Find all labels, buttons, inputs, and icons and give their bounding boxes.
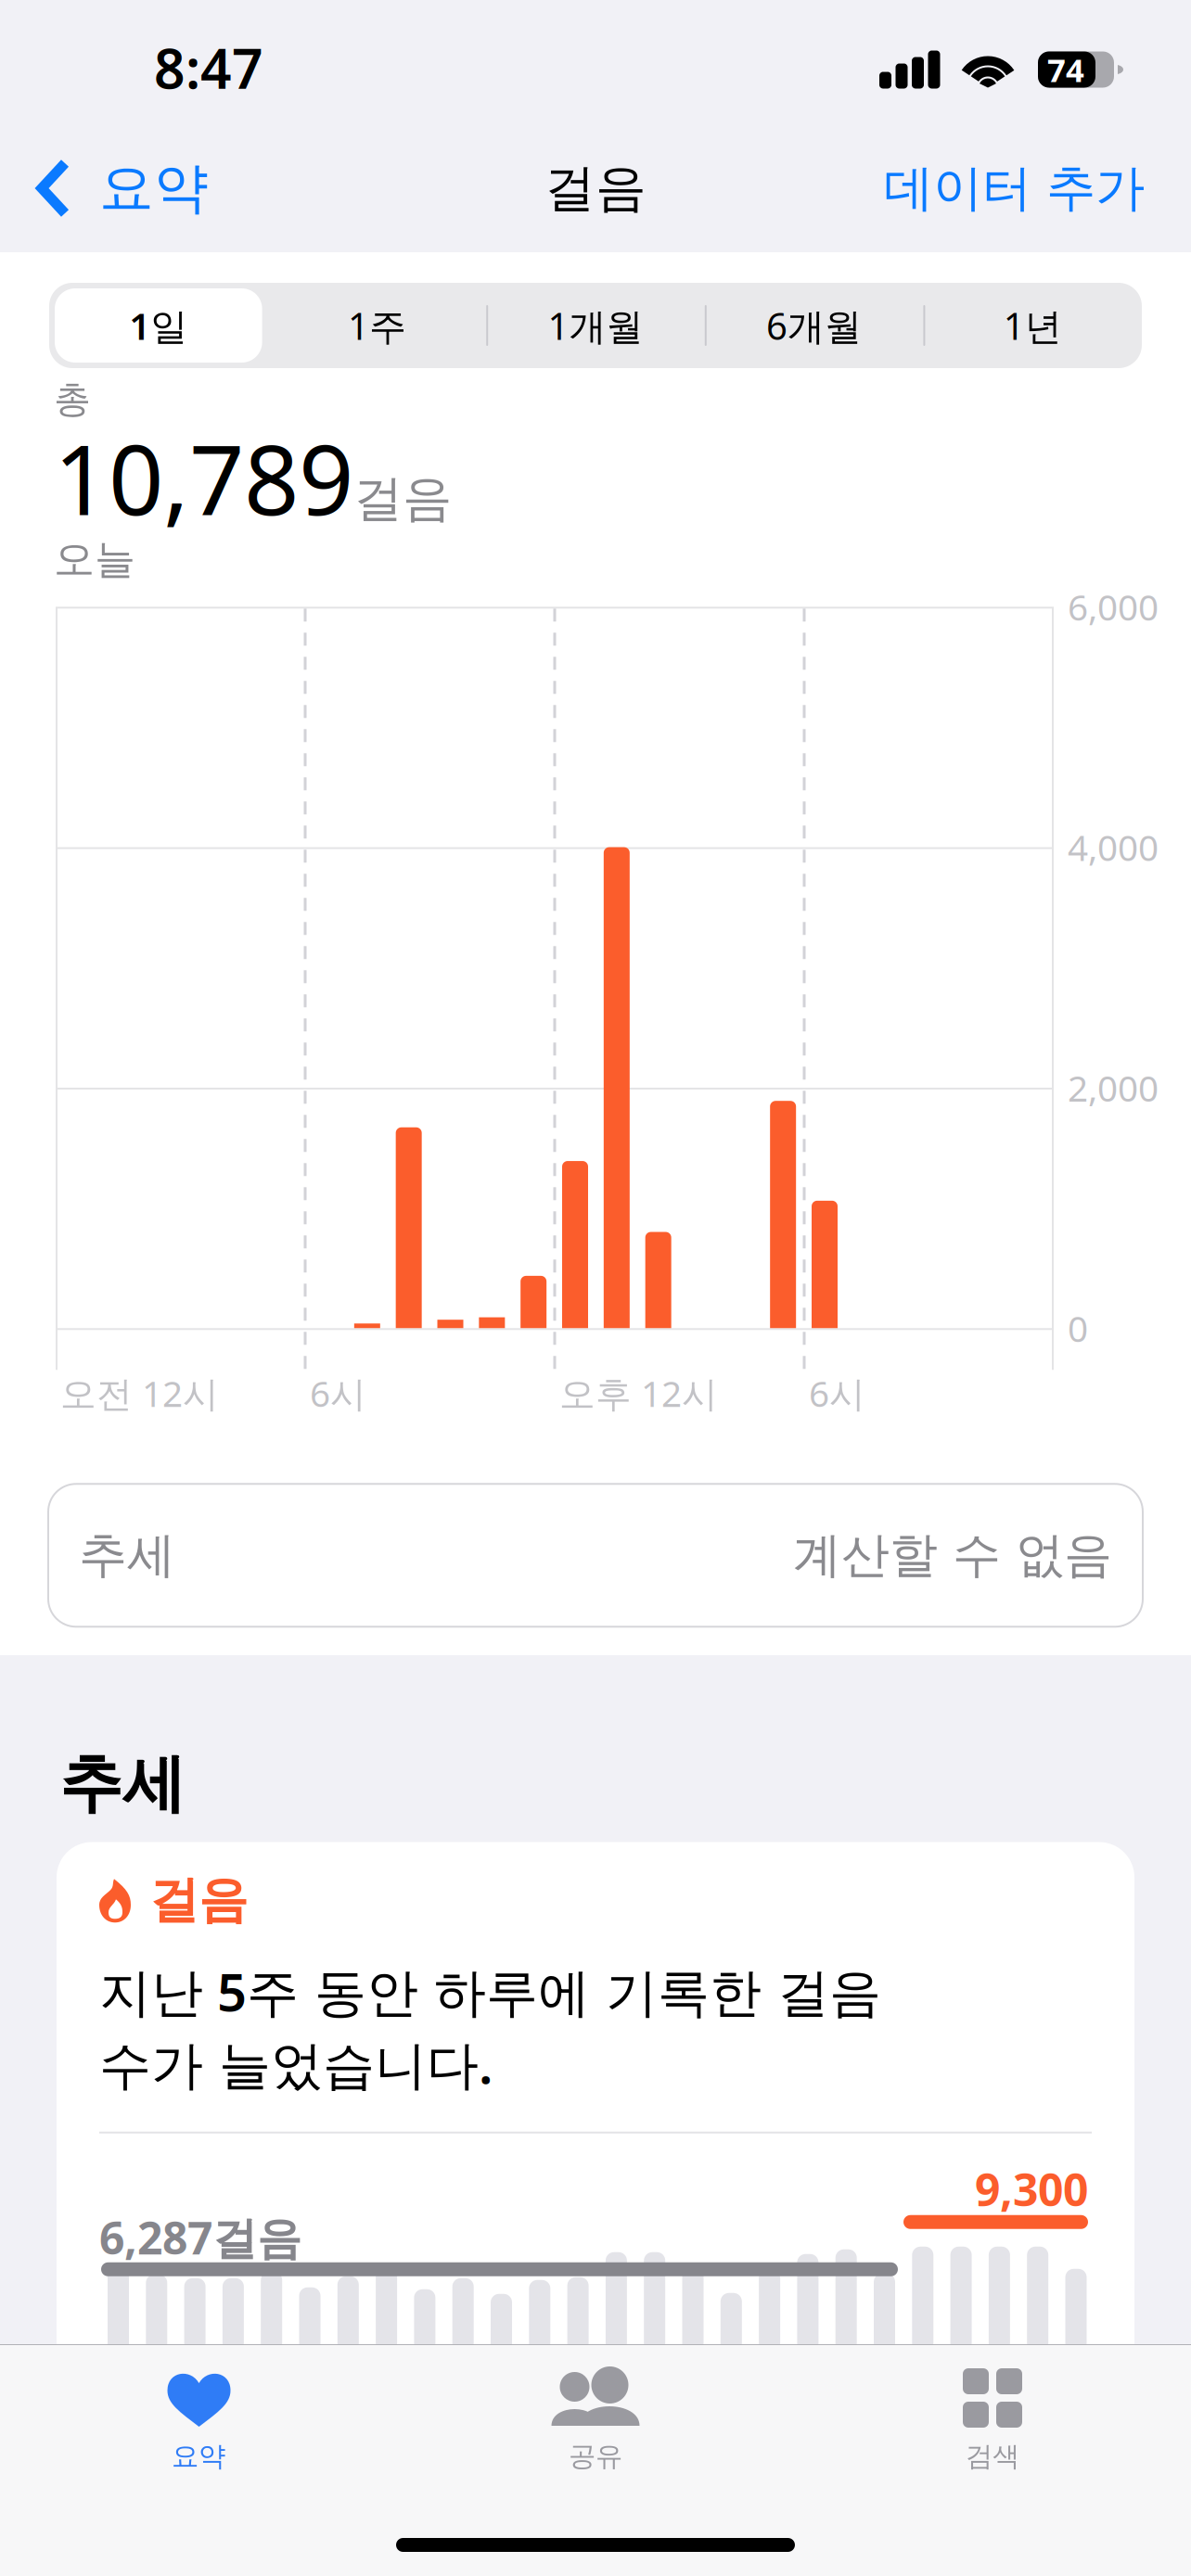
staticText: 1년 [1003,301,1062,350]
staticText: 10,789 [54,414,353,542]
staticText: 오전 12시 [60,1369,219,1417]
staticText: 요약 [172,2440,225,2473]
staticText: 6개월 [766,301,862,350]
staticText: 1개월 [548,301,643,350]
button[interactable]: 데이터 추가 [856,137,1191,239]
staticText: 1일 [129,301,188,350]
staticText: 4,000 [1068,823,1159,871]
staticText: 걸음 [544,157,647,219]
staticText: 걸음 [149,1870,248,1931]
button[interactable]: 1년 [923,283,1142,368]
button[interactable]: 요약 [0,2345,397,2473]
staticText: 총 [54,376,91,422]
button[interactable]: 1개월 [486,283,705,368]
staticText: 걸음 [353,468,452,529]
staticText: 6,000 [1068,583,1159,630]
staticText: 오후 12시 [559,1369,718,1417]
button[interactable]: 추세 [0,1483,1191,1628]
button[interactable]: 검색 [794,2345,1191,2473]
staticText: 2,000 [1068,1064,1159,1111]
staticText: 6시 [310,1369,366,1417]
staticText: 공유 [569,2440,622,2473]
staticText: 검색 [966,2440,1019,2473]
staticText: 계산할 수 없음 [793,1526,1112,1585]
staticText: 1주 [348,301,406,350]
button[interactable]: 공유 [397,2345,794,2473]
staticText: 추세 [59,1745,186,1823]
button[interactable]: 1주 [268,283,486,368]
staticText: 오늘 [54,534,135,584]
staticText: 6시 [809,1369,865,1417]
button[interactable]: 6개월 [705,283,923,368]
button[interactable]: 1일 [49,283,268,368]
staticText: 8:47 [154,32,263,104]
staticText: 9,300 [975,2159,1088,2219]
staticText: 추세 [79,1526,175,1585]
staticText: 74 [1047,48,1084,91]
staticText: 수가 늘었습니다. [99,2029,493,2098]
staticText: 데이터 추가 [884,158,1145,219]
button[interactable]: 요약 [0,134,237,242]
staticText: 6,287걸음 [99,2208,301,2267]
staticText: 요약 [99,155,209,222]
staticText: 지난 5주 동안 하루에 기록한 걸음 [99,1957,881,2026]
staticText: 0 [1068,1304,1088,1352]
